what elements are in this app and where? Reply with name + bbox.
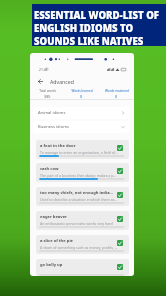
staticText: SOUNDS LIKE NATIVES (34, 35, 144, 48)
staticText (40, 269, 120, 274)
staticText: Words mastered (105, 89, 129, 93)
button[interactable]: a slice of the pie (36, 235, 129, 254)
staticText: Used to describe a situation in which th… (40, 197, 120, 202)
button[interactable]: Total words (30, 89, 64, 99)
staticText: Words learned (71, 89, 93, 93)
button[interactable]: Back (36, 77, 44, 85)
staticText: 0 (80, 94, 83, 99)
button[interactable]: a foot in the door (36, 140, 129, 159)
staticText: ESSENTIAL WORD-LIST OF (34, 9, 159, 22)
staticText: too many chiefs, not enough indians (40, 190, 114, 196)
staticText: An enthusiastic person who works very ha… (40, 221, 120, 226)
staticText: 0 (115, 94, 118, 99)
staticText: A share of something such as money, prof… (40, 245, 120, 250)
staticText: To manage to enter an organization, a fi… (40, 150, 120, 155)
button[interactable]: Business idioms (33, 121, 130, 133)
button[interactable]: Mark as learned (117, 192, 123, 198)
button[interactable]: Animal idioms (33, 107, 130, 119)
staticText: a foot in the door (40, 143, 114, 149)
button[interactable]: Words mastered (99, 89, 134, 99)
button[interactable]: eager beaver (36, 211, 129, 230)
staticText: eager beaver (40, 214, 114, 220)
button[interactable]: Mark as learned (117, 216, 123, 222)
button[interactable]: Words learned (64, 89, 99, 99)
button[interactable]: Mark as learned (117, 240, 123, 246)
staticText: Animal idioms (38, 110, 66, 116)
button[interactable]: cash cow (36, 163, 129, 182)
button[interactable]: too many chiefs, not enough indians (36, 187, 129, 206)
staticText: a slice of the pie (40, 238, 114, 244)
button[interactable]: Mark as learned (117, 145, 123, 151)
staticText: Business idioms (38, 124, 69, 130)
staticText: ENGLISH IDIOMS TO (34, 22, 134, 35)
staticText: Total words (39, 89, 56, 93)
staticText: Advanced (50, 78, 74, 85)
staticText: go belly up (40, 262, 114, 268)
staticText: cash cow (40, 166, 114, 172)
staticText: The part of a business that always makes… (40, 173, 120, 178)
button[interactable]: go belly up (36, 259, 129, 276)
staticText: 385 (44, 94, 51, 99)
button[interactable]: Mark as learned (117, 264, 123, 270)
staticText: 21:48 (39, 67, 48, 71)
button[interactable]: Mark as learned (117, 168, 123, 174)
